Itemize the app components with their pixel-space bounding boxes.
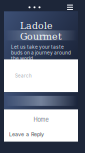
staticText: Leave a Reply	[9, 131, 44, 138]
staticText: Home	[33, 116, 48, 123]
staticText: Ladole Gourmet	[20, 20, 62, 42]
button[interactable]: Menu	[65, 2, 75, 12]
staticText: Let us take your taste buds on a journey…	[11, 44, 71, 61]
staticText: Search	[15, 73, 32, 79]
